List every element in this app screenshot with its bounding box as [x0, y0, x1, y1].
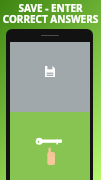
staticText: SAVE - ENTER CORRECT ANSWERS	[0, 1, 101, 26]
button[interactable]: Save	[45, 66, 55, 77]
